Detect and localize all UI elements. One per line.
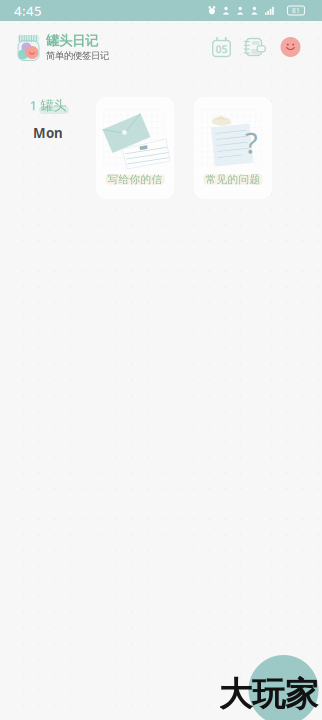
staticText: 写给你的信 [107, 173, 162, 186]
staticText: Mon [33, 124, 63, 142]
staticText: 81 [292, 6, 300, 15]
staticText: 4:45 [14, 2, 42, 19]
button[interactable]: Calendar [212, 36, 231, 57]
staticText: 1 罐头 [29, 96, 66, 114]
staticText: 05 [215, 42, 227, 56]
staticText: ? [245, 123, 258, 162]
button[interactable]: Profile [280, 36, 301, 57]
staticText: 罐头日记 [46, 33, 98, 49]
staticText: 常见的问题 [205, 173, 260, 186]
button[interactable]: ? [194, 97, 272, 199]
button[interactable]: Notebook [245, 36, 265, 57]
staticText: 大玩家 [219, 674, 318, 715]
staticText: 简单的便签日记 [46, 50, 109, 61]
button[interactable]: 写给你的信 [96, 97, 174, 199]
